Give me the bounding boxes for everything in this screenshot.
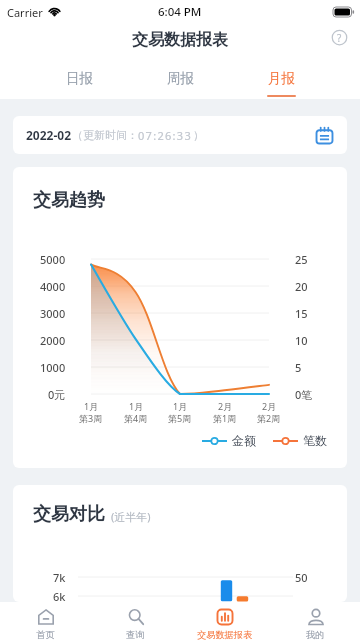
staticText: 交易数据报表 — [132, 30, 228, 50]
staticText: 2000 — [40, 333, 66, 348]
staticText: 首页 — [36, 629, 55, 641]
staticText: 5000 — [40, 252, 66, 267]
staticText: 第5周 — [168, 412, 192, 424]
staticText: 第4周 — [124, 412, 148, 424]
staticText: 金额 — [232, 433, 256, 448]
staticText: 50 — [295, 570, 308, 585]
staticText: 4000 — [40, 279, 66, 294]
staticText: 1月 — [129, 400, 144, 412]
button[interactable]: 日报 — [28, 56, 130, 99]
staticText: 6:04 PM — [158, 4, 202, 20]
staticText: 07:26:33 — [138, 128, 193, 143]
staticText: 6k — [53, 589, 66, 602]
button[interactable]: 周报 — [130, 56, 231, 99]
staticText: 0笔 — [295, 387, 313, 402]
staticText: 1000 — [40, 360, 66, 375]
staticText: 5 — [295, 360, 302, 375]
staticText: 3000 — [40, 306, 66, 321]
staticText: 15 — [295, 306, 308, 321]
staticText: 2月 — [218, 400, 233, 412]
staticText: 交易数据报表 — [197, 629, 253, 641]
staticText: ） — [193, 128, 204, 142]
staticText: 交易对比 — [33, 503, 105, 526]
staticText: 交易趋势 — [33, 189, 105, 212]
staticText: 日报 — [66, 70, 93, 87]
staticText: 我的 — [306, 629, 325, 641]
button[interactable]: 帮助 — [329, 27, 350, 48]
button[interactable]: 首页 — [0, 602, 90, 644]
button[interactable]: 月报 — [231, 56, 332, 99]
staticText: 第2周 — [257, 412, 281, 424]
other: 选择日期 — [315, 126, 334, 145]
staticText: 2022-02 — [26, 127, 72, 143]
staticText: 周报 — [167, 70, 194, 87]
staticText: 1月 — [173, 400, 188, 412]
staticText: 笔数 — [303, 433, 327, 448]
staticText: 查询 — [126, 629, 145, 641]
staticText: （更新时间： — [72, 128, 138, 142]
staticText: 月报 — [268, 70, 295, 87]
button[interactable]: 我的 — [270, 602, 360, 644]
staticText: 7k — [53, 570, 66, 585]
staticText: 第3周 — [79, 412, 103, 424]
staticText: 2月 — [262, 400, 277, 412]
staticText: (近半年) — [111, 509, 151, 524]
staticText: 1月 — [84, 400, 99, 412]
staticText: 第1周 — [213, 412, 237, 424]
staticText: 20 — [295, 279, 308, 294]
button[interactable]: 2022-02 — [13, 116, 347, 154]
staticText: 10 — [295, 333, 308, 348]
staticText: Carrier — [7, 5, 43, 20]
staticText: 25 — [295, 252, 308, 267]
staticText: 0元 — [48, 387, 66, 402]
button[interactable]: 交易数据报表 — [180, 602, 270, 644]
staticText: ? — [337, 31, 342, 45]
button[interactable]: 查询 — [90, 602, 180, 644]
